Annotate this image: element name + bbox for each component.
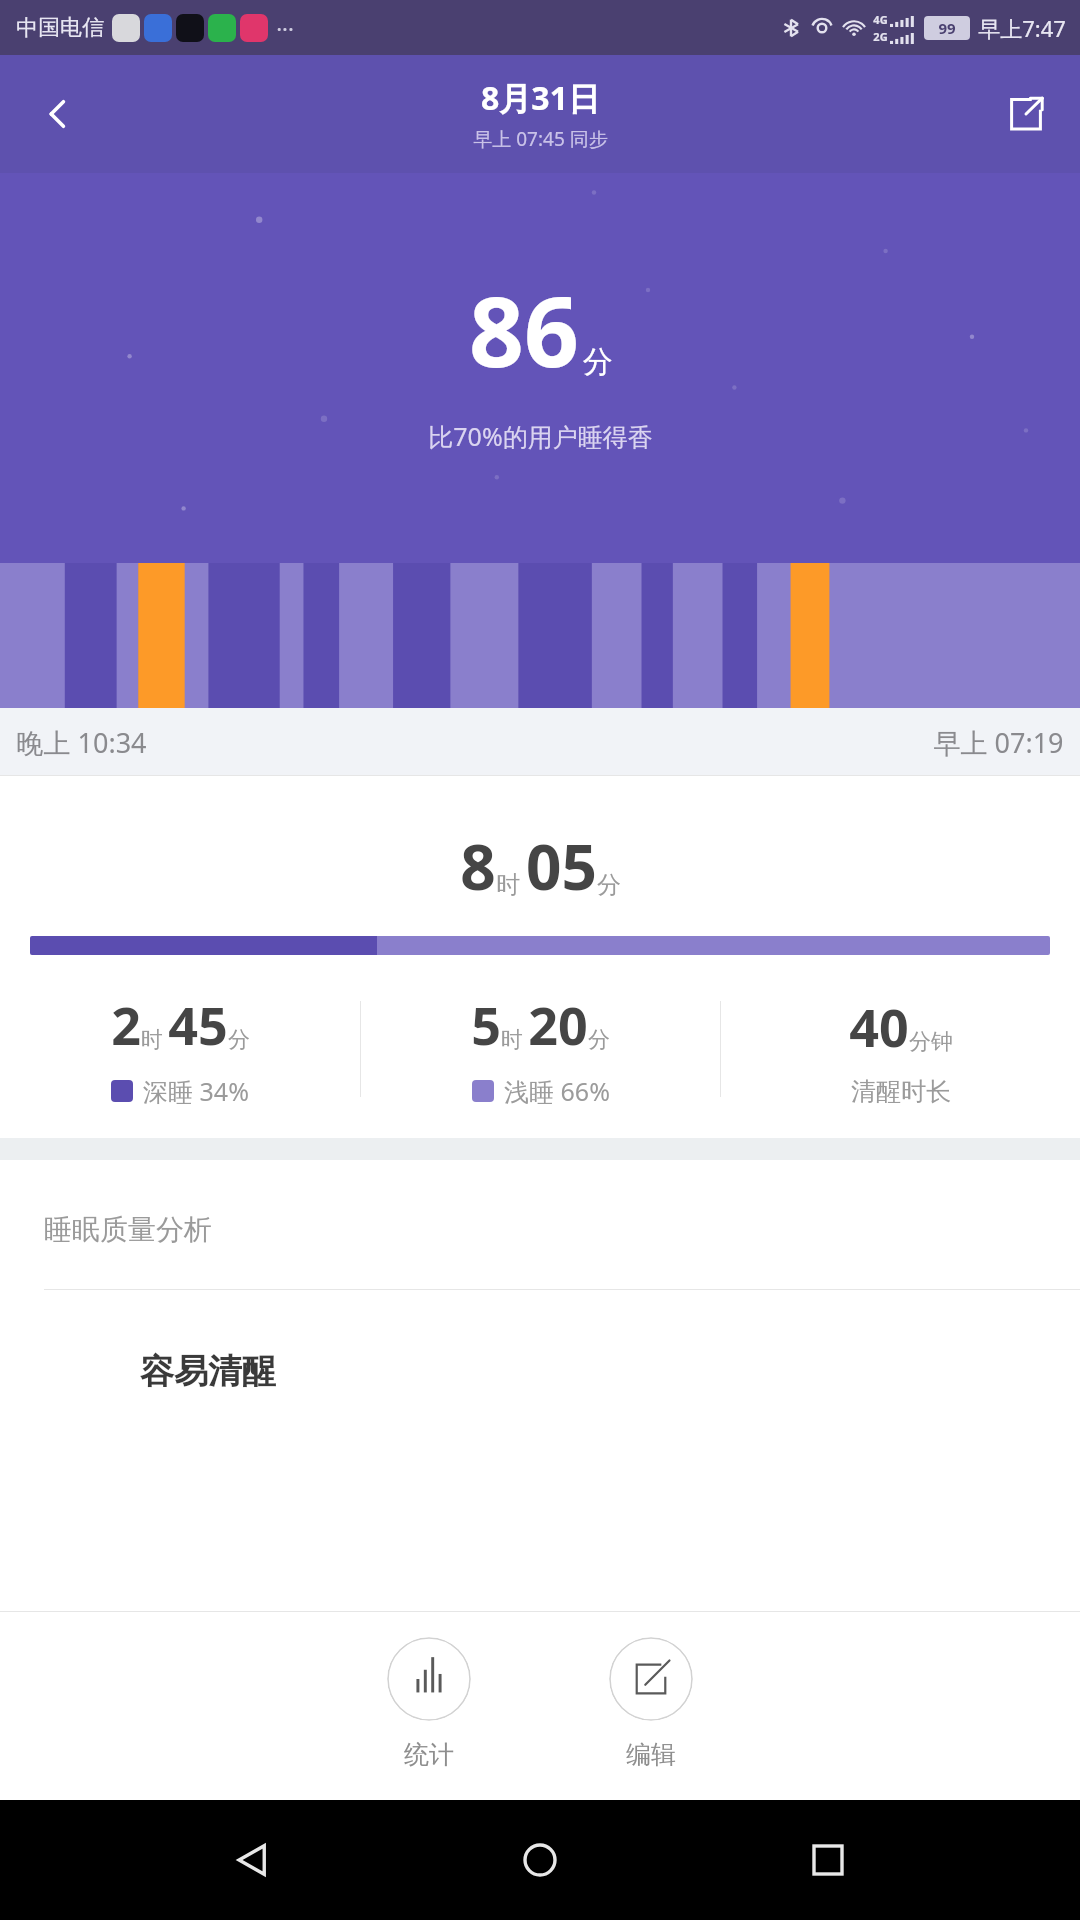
staticText: 分	[228, 1026, 250, 1054]
staticText: 分	[588, 1026, 610, 1054]
staticText: 分	[597, 870, 621, 900]
button[interactable]: Edit	[599, 1637, 703, 1770]
staticText: 中国电信	[16, 14, 104, 42]
staticText: 统计	[404, 1739, 454, 1770]
staticText: 深睡 34%	[143, 1074, 249, 1108]
button[interactable]: Home	[504, 1824, 576, 1896]
staticText: 清醒时长	[851, 1076, 951, 1107]
staticText: 浅睡 66%	[504, 1074, 610, 1108]
button[interactable]: Back	[26, 82, 90, 146]
staticText: 8月31日	[481, 76, 600, 120]
staticText: 5	[471, 989, 501, 1060]
staticText: 2G	[873, 29, 888, 44]
staticText: 20	[528, 989, 588, 1060]
staticText: 8	[460, 824, 496, 908]
staticText: 容易清醒	[140, 1350, 276, 1393]
button[interactable]: Share	[994, 82, 1058, 146]
staticText: 99	[938, 18, 956, 38]
staticText: 05	[526, 824, 597, 908]
button[interactable]: Back	[216, 1824, 288, 1896]
staticText: 45	[168, 989, 228, 1060]
staticText: 晚上 10:34	[16, 724, 147, 761]
staticText: 时	[141, 1026, 163, 1054]
button[interactable]: Statistics	[377, 1637, 481, 1770]
staticText: 86	[469, 264, 579, 395]
staticText: ···	[276, 13, 294, 43]
staticText: 2	[111, 989, 141, 1060]
staticText: 4G	[873, 12, 888, 27]
staticText: 编辑	[626, 1739, 676, 1770]
button[interactable]: 40	[721, 991, 1080, 1107]
staticText: 早上 07:19	[933, 724, 1064, 761]
staticText: 早上7:47	[978, 13, 1066, 43]
staticText: 睡眠质量分析	[44, 1212, 212, 1247]
staticText: 早上 07:45 同步	[473, 126, 608, 152]
button[interactable]: Recents	[792, 1824, 864, 1896]
staticText: 分	[583, 343, 613, 381]
staticText: 时	[501, 1026, 523, 1054]
staticText: 比70%的用户睡得香	[428, 419, 653, 453]
staticText: 分钟	[909, 1028, 953, 1056]
staticText: 时	[496, 870, 520, 900]
button[interactable]: 5	[361, 989, 720, 1108]
button[interactable]: 2	[0, 989, 360, 1108]
staticText: 40	[849, 991, 909, 1062]
